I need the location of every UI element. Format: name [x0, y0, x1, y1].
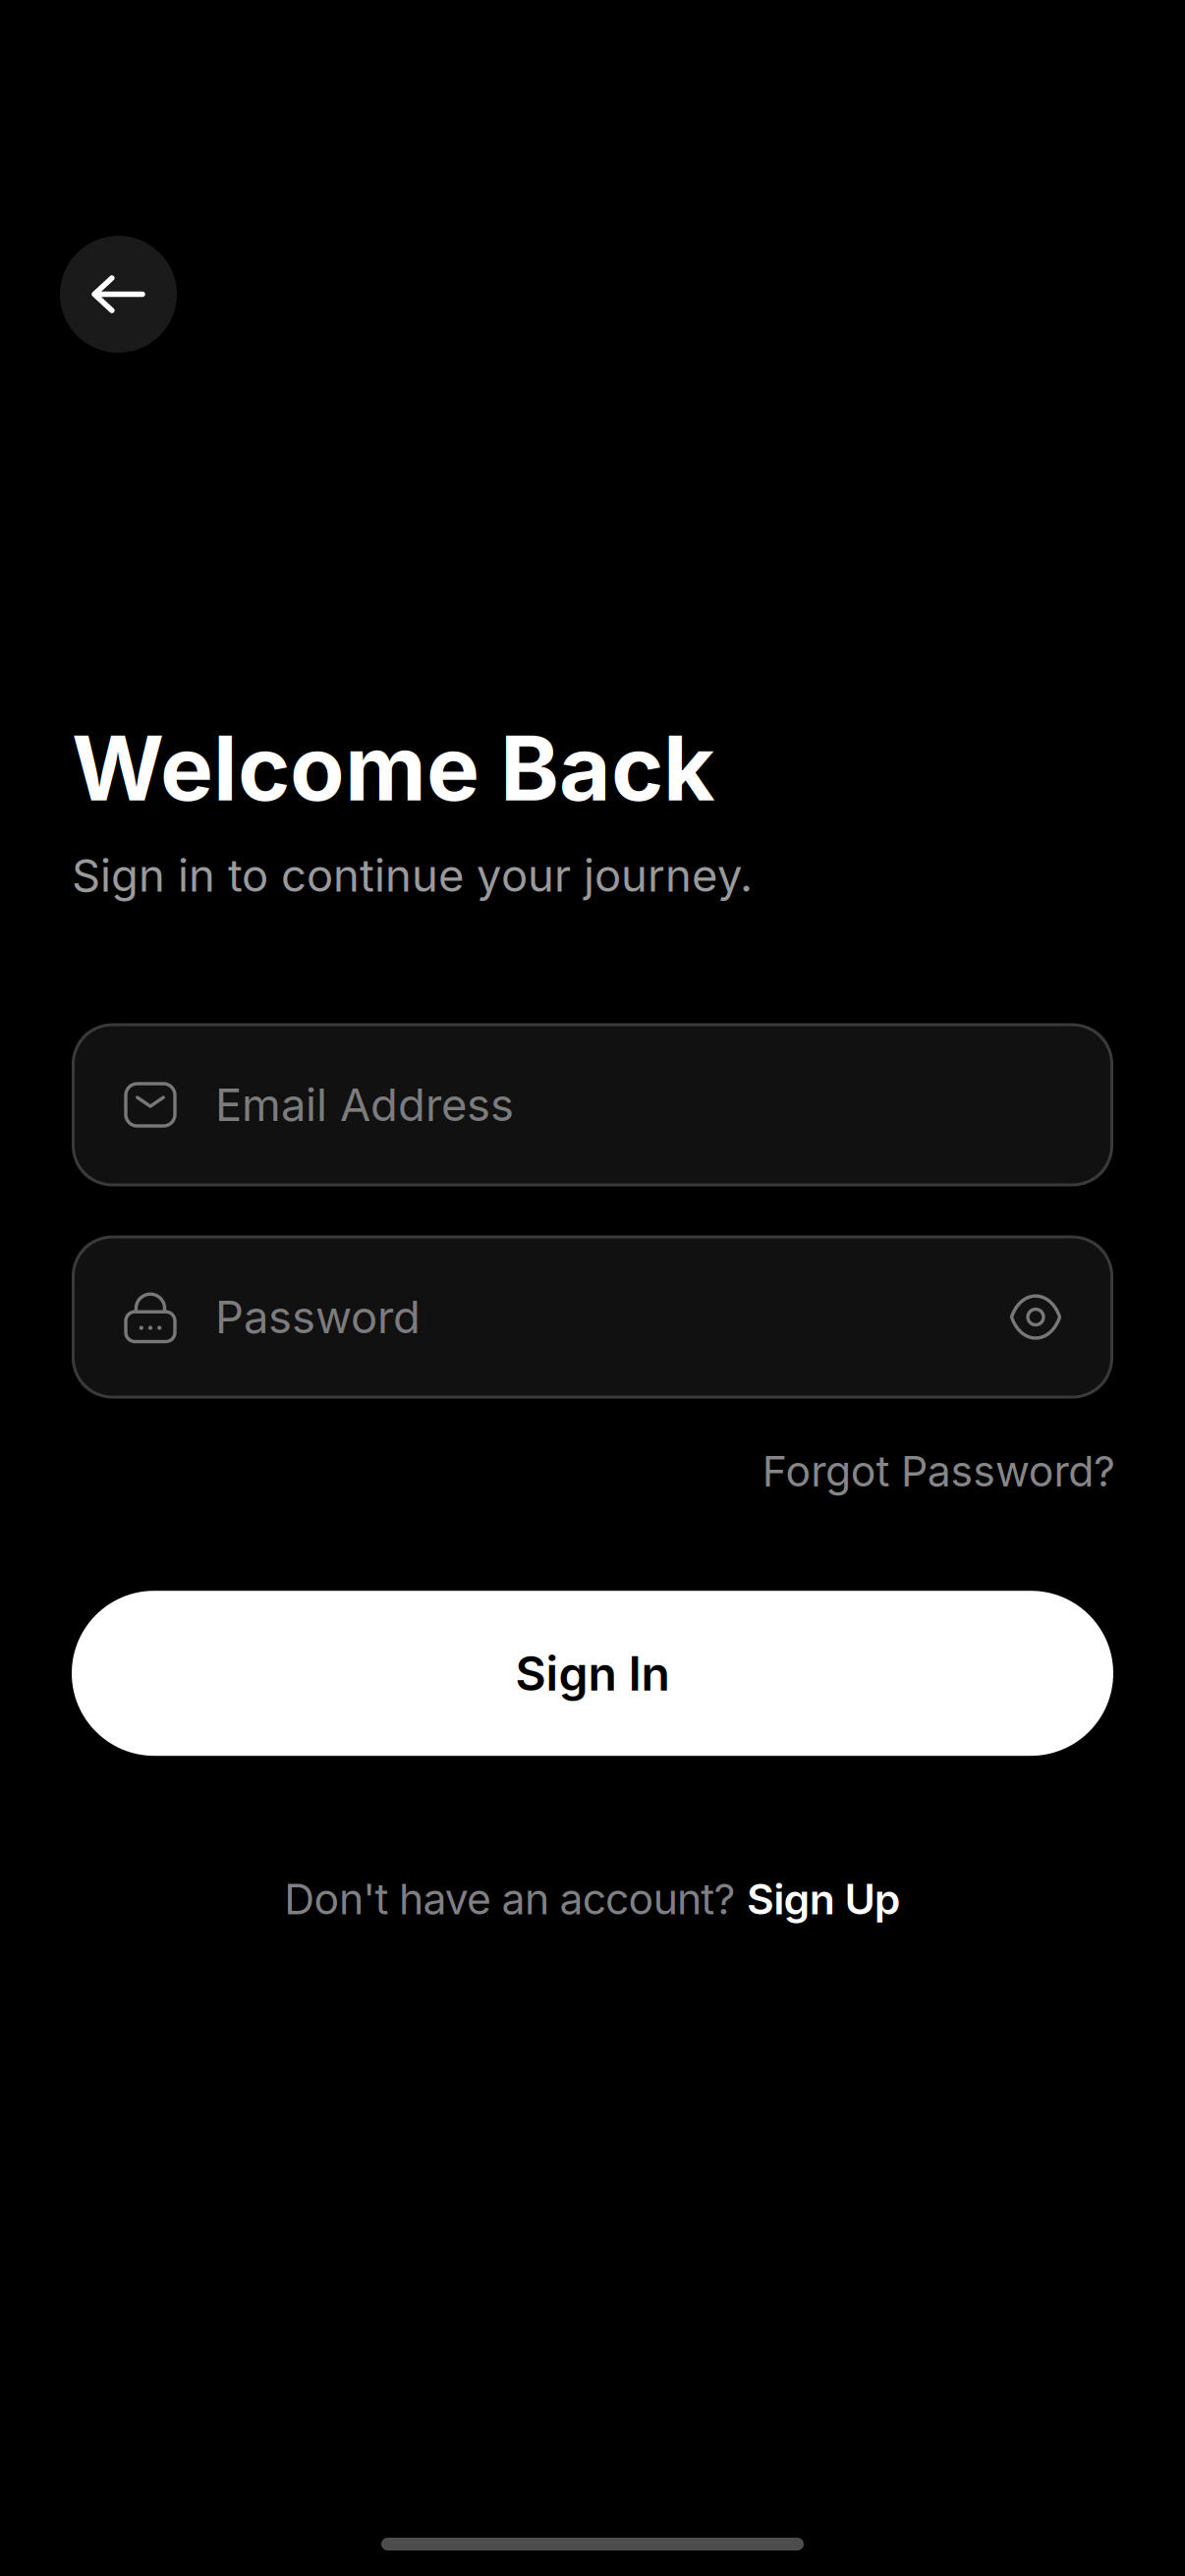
button[interactable]: Don't have an account?: [284, 1874, 901, 1924]
staticText: Sign in to continue your journey.: [72, 849, 753, 902]
button[interactable]: Email Address: [72, 1023, 1113, 1186]
staticText: Forgot Password?: [762, 1446, 1115, 1496]
staticText: Password: [215, 1290, 421, 1344]
button[interactable]: Show password: [1012, 1296, 1060, 1338]
button[interactable]: Forgot Password?: [762, 1446, 1115, 1496]
button[interactable]: Back: [60, 236, 177, 353]
staticText: Don't have an account?: [284, 1874, 747, 1924]
staticText: Email Address: [215, 1078, 514, 1132]
button[interactable]: Password: [72, 1236, 1113, 1399]
staticText: Sign In: [515, 1645, 670, 1702]
staticText: Sign Up: [747, 1874, 901, 1924]
staticText: Welcome Back: [72, 714, 715, 822]
button[interactable]: Sign In: [72, 1591, 1113, 1756]
